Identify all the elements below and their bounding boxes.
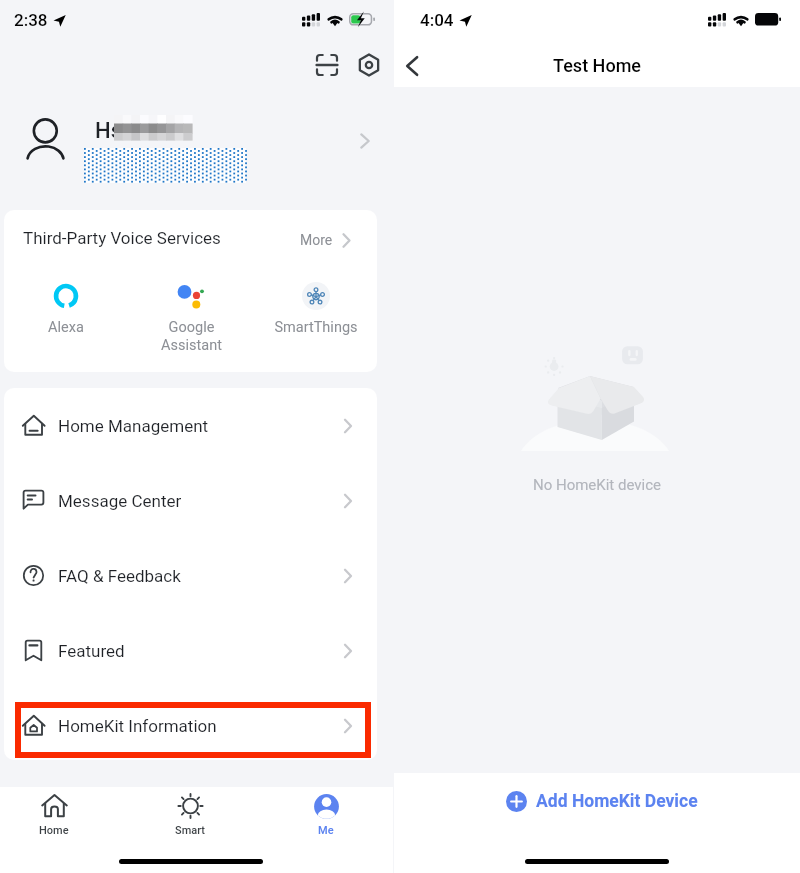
button[interactable]: Me [286, 794, 366, 844]
staticText: Alexa [48, 319, 84, 336]
button[interactable]: FAQ & Feedback [22, 538, 356, 613]
staticText: More [300, 232, 333, 248]
staticText: SmartThings [274, 319, 358, 336]
staticText: Third-Party Voice Services [23, 228, 221, 248]
staticText: FAQ & Feedback [58, 566, 181, 586]
staticText: Featured [58, 641, 125, 661]
button[interactable]: SmartThings [264, 282, 368, 336]
staticText: HomeKit Information [58, 716, 217, 736]
staticText: Home [39, 824, 69, 837]
button[interactable]: Add HomeKit Device [500, 785, 704, 817]
staticText: Add HomeKit Device [536, 791, 698, 812]
staticText: 2:38 [14, 10, 48, 30]
button[interactable]: Alexa [14, 282, 118, 336]
button[interactable]: Back [393, 48, 429, 84]
staticText: Hs [95, 118, 123, 144]
staticText: Google Assistant [161, 319, 222, 354]
button[interactable]: Home Management [22, 388, 356, 463]
staticText: No HomeKit device [394, 476, 800, 494]
staticText: Smart [175, 824, 205, 837]
button[interactable]: More [296, 227, 358, 253]
staticText: Me [318, 824, 334, 837]
staticText: Message Center [58, 491, 182, 511]
button[interactable]: Hs [0, 100, 393, 196]
staticText: 4:04 [420, 10, 454, 30]
button[interactable]: Google Assistant [139, 282, 243, 354]
button[interactable]: HomeKit Information [22, 688, 356, 760]
staticText: Test Home [394, 55, 800, 76]
button[interactable]: Settings [354, 50, 384, 80]
button[interactable]: Featured [22, 613, 356, 688]
button[interactable]: Home [14, 794, 94, 844]
staticText: Home Management [58, 416, 209, 436]
button[interactable]: Smart [150, 794, 230, 844]
button[interactable]: Message Center [22, 463, 356, 538]
button[interactable]: Scan code [312, 50, 342, 80]
